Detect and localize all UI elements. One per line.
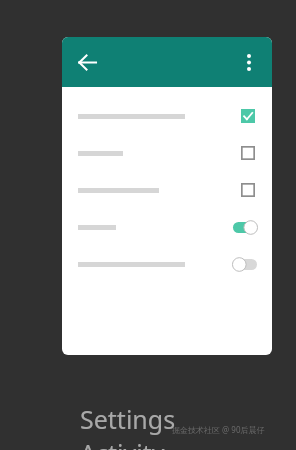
button[interactable]: Back [70, 45, 104, 79]
button[interactable]: Off [62, 255, 272, 273]
button[interactable]: On [232, 218, 258, 236]
button[interactable]: Unchecked [238, 144, 258, 162]
button[interactable]: Unchecked [238, 181, 258, 199]
button[interactable]: More options [234, 47, 264, 77]
button[interactable]: Off [232, 255, 258, 273]
button[interactable]: Unchecked [62, 181, 272, 199]
button[interactable]: On [62, 218, 272, 236]
button[interactable]: Checked [238, 107, 258, 125]
button[interactable]: Checked [62, 107, 272, 125]
button[interactable]: Unchecked [62, 144, 272, 162]
staticText: Settings Activity [80, 402, 260, 450]
staticText: 掘金技术社区 @ 90后晨仔 [172, 424, 265, 435]
